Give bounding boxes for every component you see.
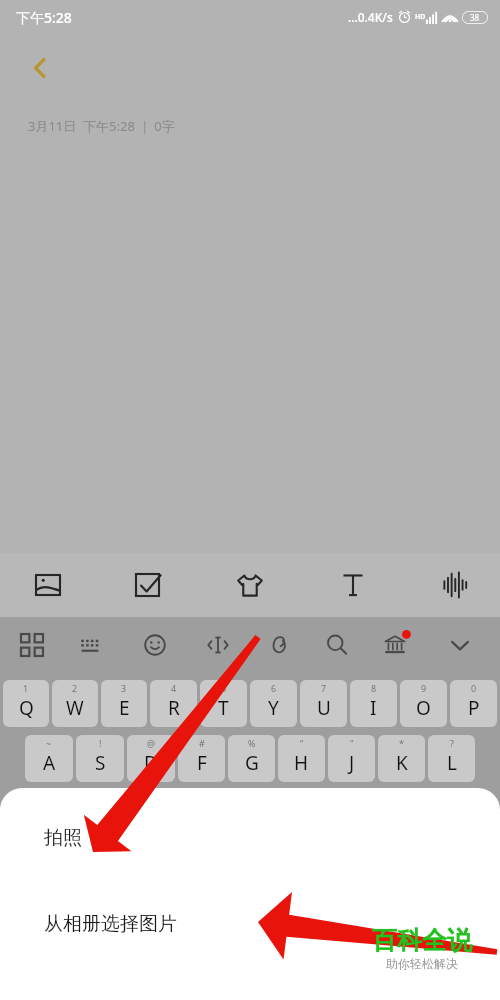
button[interactable]: Bank — [374, 624, 416, 666]
staticText: ! — [99, 737, 102, 749]
button[interactable]: Style — [224, 559, 276, 611]
button[interactable]: 3 — [101, 680, 147, 727]
staticText: T — [218, 695, 229, 721]
staticText: U — [317, 695, 331, 721]
button[interactable]: 5 — [200, 680, 247, 727]
button[interactable]: 从相册选择图片 — [0, 888, 500, 1000]
staticText: “ — [300, 737, 304, 749]
staticText: " — [350, 737, 354, 749]
staticText: A — [43, 750, 56, 776]
button[interactable]: Back — [16, 44, 64, 92]
button[interactable]: ~ — [25, 735, 73, 782]
staticText: F — [197, 750, 207, 776]
staticText: % — [248, 737, 256, 749]
button[interactable]: 0 — [450, 680, 497, 727]
button[interactable]: 6 — [250, 680, 297, 727]
staticText: I — [370, 695, 377, 721]
staticText: ~ — [46, 737, 52, 749]
button[interactable]: Insert image — [22, 559, 74, 611]
staticText: ? — [450, 737, 454, 749]
staticText: 7 — [321, 682, 327, 694]
staticText: 5 — [221, 682, 227, 694]
staticText: H — [294, 750, 309, 776]
staticText: 9 — [421, 682, 427, 694]
button[interactable]: Apps — [11, 624, 53, 666]
button[interactable]: ? — [428, 735, 475, 782]
button[interactable]: ! — [76, 735, 124, 782]
staticText: 百科全说 — [372, 925, 472, 956]
staticText: # — [199, 737, 205, 749]
button[interactable]: 拍照 — [0, 788, 500, 888]
button[interactable]: 2 — [52, 680, 98, 727]
button[interactable]: 9 — [400, 680, 447, 727]
staticText: 3月11日 下午5:28 ｜ 0字 — [28, 117, 175, 135]
staticText: 1 — [23, 682, 29, 694]
button[interactable]: * — [378, 735, 425, 782]
button[interactable]: # — [178, 735, 225, 782]
staticText: D — [144, 750, 158, 776]
staticText: 拍照 — [44, 826, 82, 850]
button[interactable]: " — [328, 735, 375, 782]
staticText: HD — [415, 12, 426, 22]
staticText: P — [468, 695, 480, 721]
staticText: 6 — [271, 682, 277, 694]
staticText: 3 — [121, 682, 127, 694]
staticText: * — [399, 737, 404, 749]
button[interactable]: 8 — [350, 680, 397, 727]
staticText: R — [168, 695, 180, 721]
button[interactable]: Keyboard layout — [69, 624, 111, 666]
button[interactable]: 1 — [3, 680, 49, 727]
staticText: 从相册选择图片 — [44, 912, 177, 936]
staticText: W — [66, 695, 84, 721]
button[interactable]: “ — [278, 735, 325, 782]
staticText: E — [119, 695, 130, 721]
button[interactable]: % — [228, 735, 275, 782]
button[interactable]: Checklist — [122, 559, 174, 611]
staticText: 助你轻松解决 — [386, 956, 458, 971]
staticText: Q — [19, 695, 34, 721]
staticText: 2 — [72, 682, 78, 694]
staticText: S — [95, 750, 106, 776]
staticText: O — [416, 695, 431, 721]
staticText: 0 — [471, 682, 477, 694]
staticText: K — [396, 750, 408, 776]
button[interactable]: Cursor — [197, 624, 239, 666]
button[interactable]: Voice — [429, 559, 481, 611]
button[interactable]: Emoji — [134, 624, 176, 666]
button[interactable]: Attach — [257, 624, 299, 666]
button[interactable]: @ — [127, 735, 175, 782]
staticText: 下午5:28 — [16, 8, 72, 27]
button[interactable]: 4 — [150, 680, 197, 727]
button[interactable]: Search — [316, 624, 358, 666]
button[interactable]: Text format — [327, 559, 379, 611]
staticText: G — [245, 750, 259, 776]
staticText: 4 — [171, 682, 177, 694]
staticText: 38 — [470, 12, 480, 23]
button[interactable]: 7 — [300, 680, 347, 727]
button[interactable]: Hide keyboard — [439, 624, 481, 666]
staticText: 8 — [371, 682, 377, 694]
staticText: @ — [147, 737, 156, 749]
staticText: J — [349, 750, 355, 776]
staticText: Y — [268, 695, 279, 721]
staticText: …0.4K/s — [348, 9, 393, 25]
staticText: L — [447, 750, 457, 776]
